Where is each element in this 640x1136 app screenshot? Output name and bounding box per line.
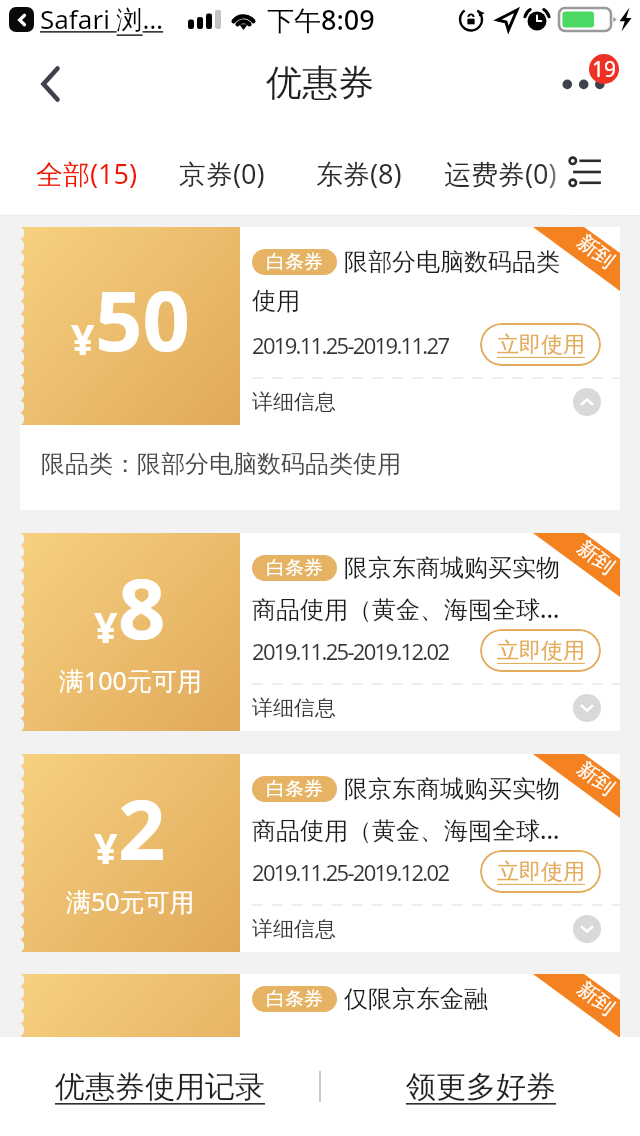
staticText: 2019.11.25-2019.12.02 — [252, 636, 449, 666]
staticText: Safari 浏… — [40, 1, 164, 37]
staticText: 限部分电脑数码品类 — [344, 247, 560, 277]
button[interactable]: 运费券(0) — [444, 141, 557, 206]
staticText: ¥ — [94, 599, 118, 655]
staticText: 50 — [95, 262, 190, 375]
staticText: 优惠券 — [266, 60, 374, 105]
staticText: 仅限京东金融 — [344, 984, 488, 1014]
button[interactable]: 立即使用 — [480, 323, 601, 366]
staticText: 运费券(0) — [444, 155, 557, 192]
staticText: 白条券 — [266, 556, 323, 580]
staticText: 新到 — [572, 229, 619, 274]
staticText: 新到 — [572, 535, 619, 580]
staticText: 京券(0) — [179, 155, 265, 192]
staticText: 立即使用 — [497, 858, 585, 886]
staticText: ¥ — [71, 311, 95, 367]
staticText: 立即使用 — [497, 637, 585, 665]
button[interactable]: 更多 — [552, 66, 614, 118]
staticText: 2 — [118, 771, 166, 884]
staticText: 8 — [118, 550, 166, 663]
staticText: 新到 — [572, 976, 619, 1021]
staticText: 全部(15) — [36, 155, 138, 192]
staticText: 详细信息 — [252, 389, 336, 415]
staticText: 使用 — [252, 286, 300, 316]
staticText: 详细信息 — [252, 916, 336, 942]
staticText: 白条券 — [266, 777, 323, 801]
button[interactable]: 详细信息 — [240, 685, 620, 731]
staticText: ¥ — [94, 820, 118, 876]
staticText: 满100元可用 — [59, 663, 202, 697]
button[interactable]: 领更多好券 — [321, 1037, 640, 1136]
staticText: 立即使用 — [497, 331, 585, 359]
staticText: 商品使用（黄金、海囤全球… — [252, 813, 560, 846]
button[interactable]: 优惠券使用记录 — [0, 1037, 319, 1136]
staticText: 19 — [592, 55, 617, 84]
button[interactable]: 详细信息 — [240, 379, 620, 425]
button[interactable]: 立即使用 — [480, 629, 601, 672]
button[interactable]: 详细信息 — [240, 906, 620, 952]
staticText: 限京东商城购买实物 — [344, 774, 560, 804]
staticText: 满50元可用 — [66, 884, 195, 918]
staticText: 限京东商城购买实物 — [344, 553, 560, 583]
staticText: 2019.11.25-2019.11.27 — [252, 330, 449, 360]
staticText: 新到 — [572, 756, 619, 801]
button[interactable]: 京券(0) — [179, 141, 265, 206]
staticText: 2019.11.25-2019.12.02 — [252, 857, 449, 887]
button[interactable]: 筛选 — [560, 150, 612, 194]
staticText: 东券(8) — [316, 155, 402, 192]
staticText: 详细信息 — [252, 695, 336, 721]
staticText: 领更多好券 — [406, 1068, 556, 1106]
button[interactable]: 返回 — [26, 60, 74, 108]
staticText: 白条券 — [266, 250, 323, 274]
staticText: 白条券 — [266, 987, 323, 1011]
button[interactable]: 东券(8) — [316, 141, 402, 206]
staticText: 限品类：限部分电脑数码品类使用 — [41, 449, 401, 479]
staticText: 下午8:09 — [267, 1, 375, 38]
staticText: 商品使用（黄金、海囤全球… — [252, 592, 560, 625]
staticText: 优惠券使用记录 — [55, 1068, 265, 1106]
button[interactable]: 全部(15) — [36, 141, 138, 206]
button[interactable]: 立即使用 — [480, 850, 601, 893]
